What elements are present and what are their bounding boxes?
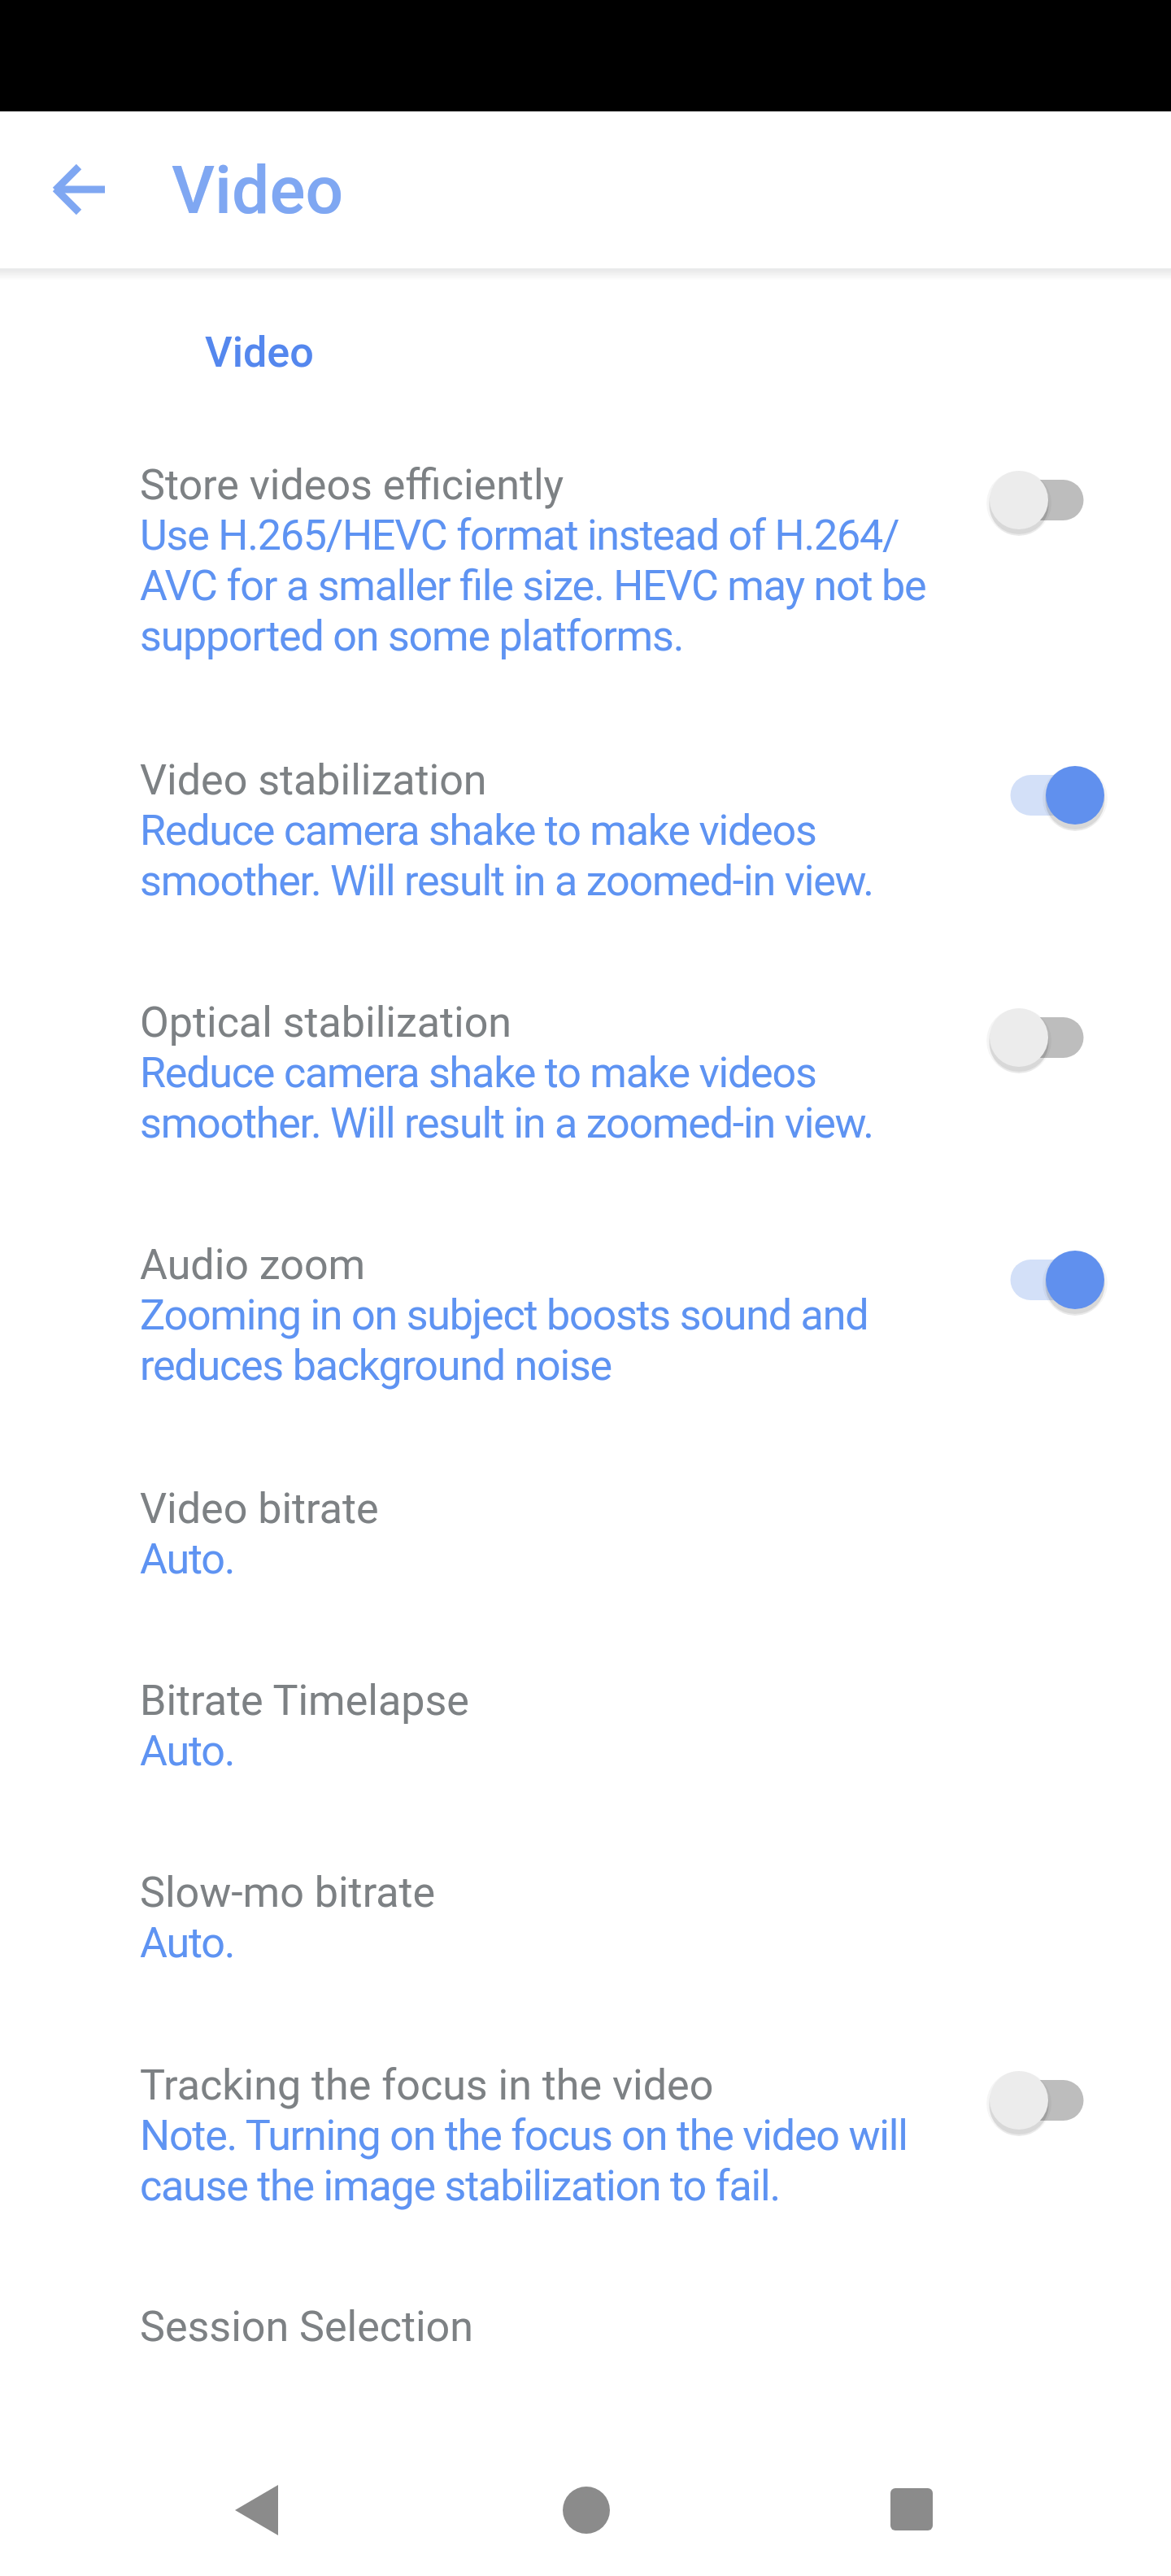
staticText: Video stabilization xyxy=(140,755,487,805)
staticText: Video xyxy=(172,151,344,229)
staticText: Zooming in on subject boosts sound and r… xyxy=(140,1290,868,1390)
staticText: Tracking the focus in the video xyxy=(140,2060,714,2110)
staticText: Reduce camera shake to make videos smoot… xyxy=(140,1048,873,1148)
staticText: Auto. xyxy=(140,1726,235,1776)
staticText: Video xyxy=(205,328,314,377)
staticText: Auto. xyxy=(140,1918,235,1968)
staticText: Audio zoom xyxy=(140,1240,366,1290)
staticText: Note. Turning on the focus on the video … xyxy=(140,2111,908,2211)
button[interactable]: Optical stabilization xyxy=(0,998,1171,1148)
staticText: Video bitrate xyxy=(140,1484,379,1534)
staticText: Use H.265/HEVC format instead of H.264/ … xyxy=(140,511,926,661)
staticText: Bitrate Timelapse xyxy=(140,1676,469,1725)
staticText: Optical stabilization xyxy=(140,998,512,1047)
staticText: Slow-mo bitrate xyxy=(140,1868,436,1917)
button[interactable]: Tracking the focus in the video xyxy=(0,2060,1171,2211)
button[interactable]: Bitrate Timelapse xyxy=(0,1676,1171,1776)
button[interactable]: Slow-mo bitrate xyxy=(0,1868,1171,1968)
button[interactable] xyxy=(45,154,116,225)
staticText: Reduce camera shake to make videos smoot… xyxy=(140,806,873,906)
button[interactable] xyxy=(871,2469,952,2550)
button[interactable]: Session Selection xyxy=(0,2302,1171,2352)
button[interactable]: Video bitrate xyxy=(0,1484,1171,1584)
button[interactable] xyxy=(546,2469,627,2551)
button[interactable] xyxy=(215,2469,297,2551)
staticText: Auto. xyxy=(140,1534,235,1584)
button[interactable]: Store videos efficiently xyxy=(0,460,1171,661)
staticText: Session Selection xyxy=(140,2302,473,2352)
staticText: Store videos efficiently xyxy=(140,460,564,510)
button[interactable]: Audio zoom xyxy=(0,1240,1171,1390)
button[interactable]: Video stabilization xyxy=(0,755,1171,906)
